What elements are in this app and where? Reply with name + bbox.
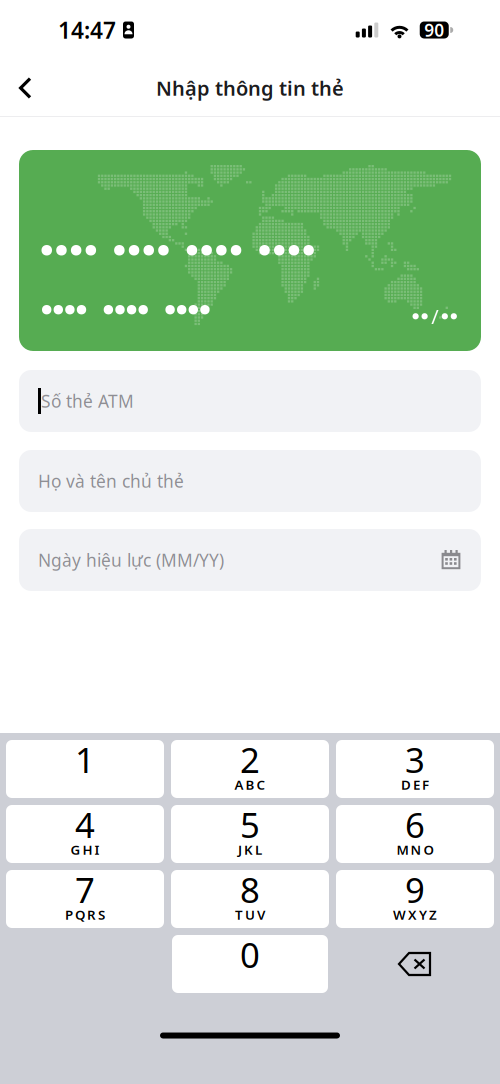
- staticText: 9: [405, 866, 425, 912]
- staticText: 4: [75, 801, 95, 847]
- button[interactable]: Back: [5, 65, 46, 111]
- staticText: DEF: [401, 776, 429, 793]
- staticText: 90: [424, 18, 444, 41]
- staticText: Số thẻ ATM: [41, 389, 134, 412]
- staticText: 1: [75, 736, 95, 782]
- staticText: /: [431, 303, 438, 330]
- button[interactable]: 1: [6, 740, 164, 798]
- button[interactable]: 9: [336, 870, 494, 928]
- staticText: 14:47: [58, 15, 116, 45]
- button[interactable]: Họ và tên chủ thẻ: [19, 450, 481, 512]
- staticText: TUV: [235, 906, 265, 923]
- staticText: GHI: [70, 841, 99, 858]
- button[interactable]: 4: [6, 805, 164, 863]
- button[interactable]: 7: [6, 870, 164, 928]
- staticText: MNO: [396, 841, 433, 858]
- button[interactable]: 3: [336, 740, 494, 798]
- button[interactable]: Delete: [335, 935, 494, 993]
- staticText: ABC: [234, 776, 265, 793]
- staticText: 6: [405, 801, 425, 847]
- button[interactable]: 6: [336, 805, 494, 863]
- button[interactable]: 5: [171, 805, 329, 863]
- staticText: JKL: [238, 841, 262, 858]
- staticText: 5: [240, 801, 260, 847]
- staticText: PQRS: [65, 906, 105, 923]
- staticText: 8: [240, 866, 260, 912]
- staticText: 7: [75, 866, 95, 912]
- staticText: 3: [405, 736, 425, 782]
- staticText: WXYZ: [393, 906, 437, 923]
- staticText: Ngày hiệu lực (MM/YY): [38, 548, 224, 571]
- button[interactable]: 2: [171, 740, 329, 798]
- staticText: Nhập thông tin thẻ: [156, 75, 344, 101]
- staticText: 2: [240, 736, 260, 782]
- button[interactable]: 0: [172, 935, 328, 993]
- staticText: Họ và tên chủ thẻ: [38, 469, 184, 492]
- button[interactable]: Ngày hiệu lực (MM/YY): [19, 529, 481, 591]
- button[interactable]: 8: [171, 870, 329, 928]
- staticText: 0: [240, 931, 260, 977]
- button[interactable]: Số thẻ ATM: [19, 370, 481, 432]
